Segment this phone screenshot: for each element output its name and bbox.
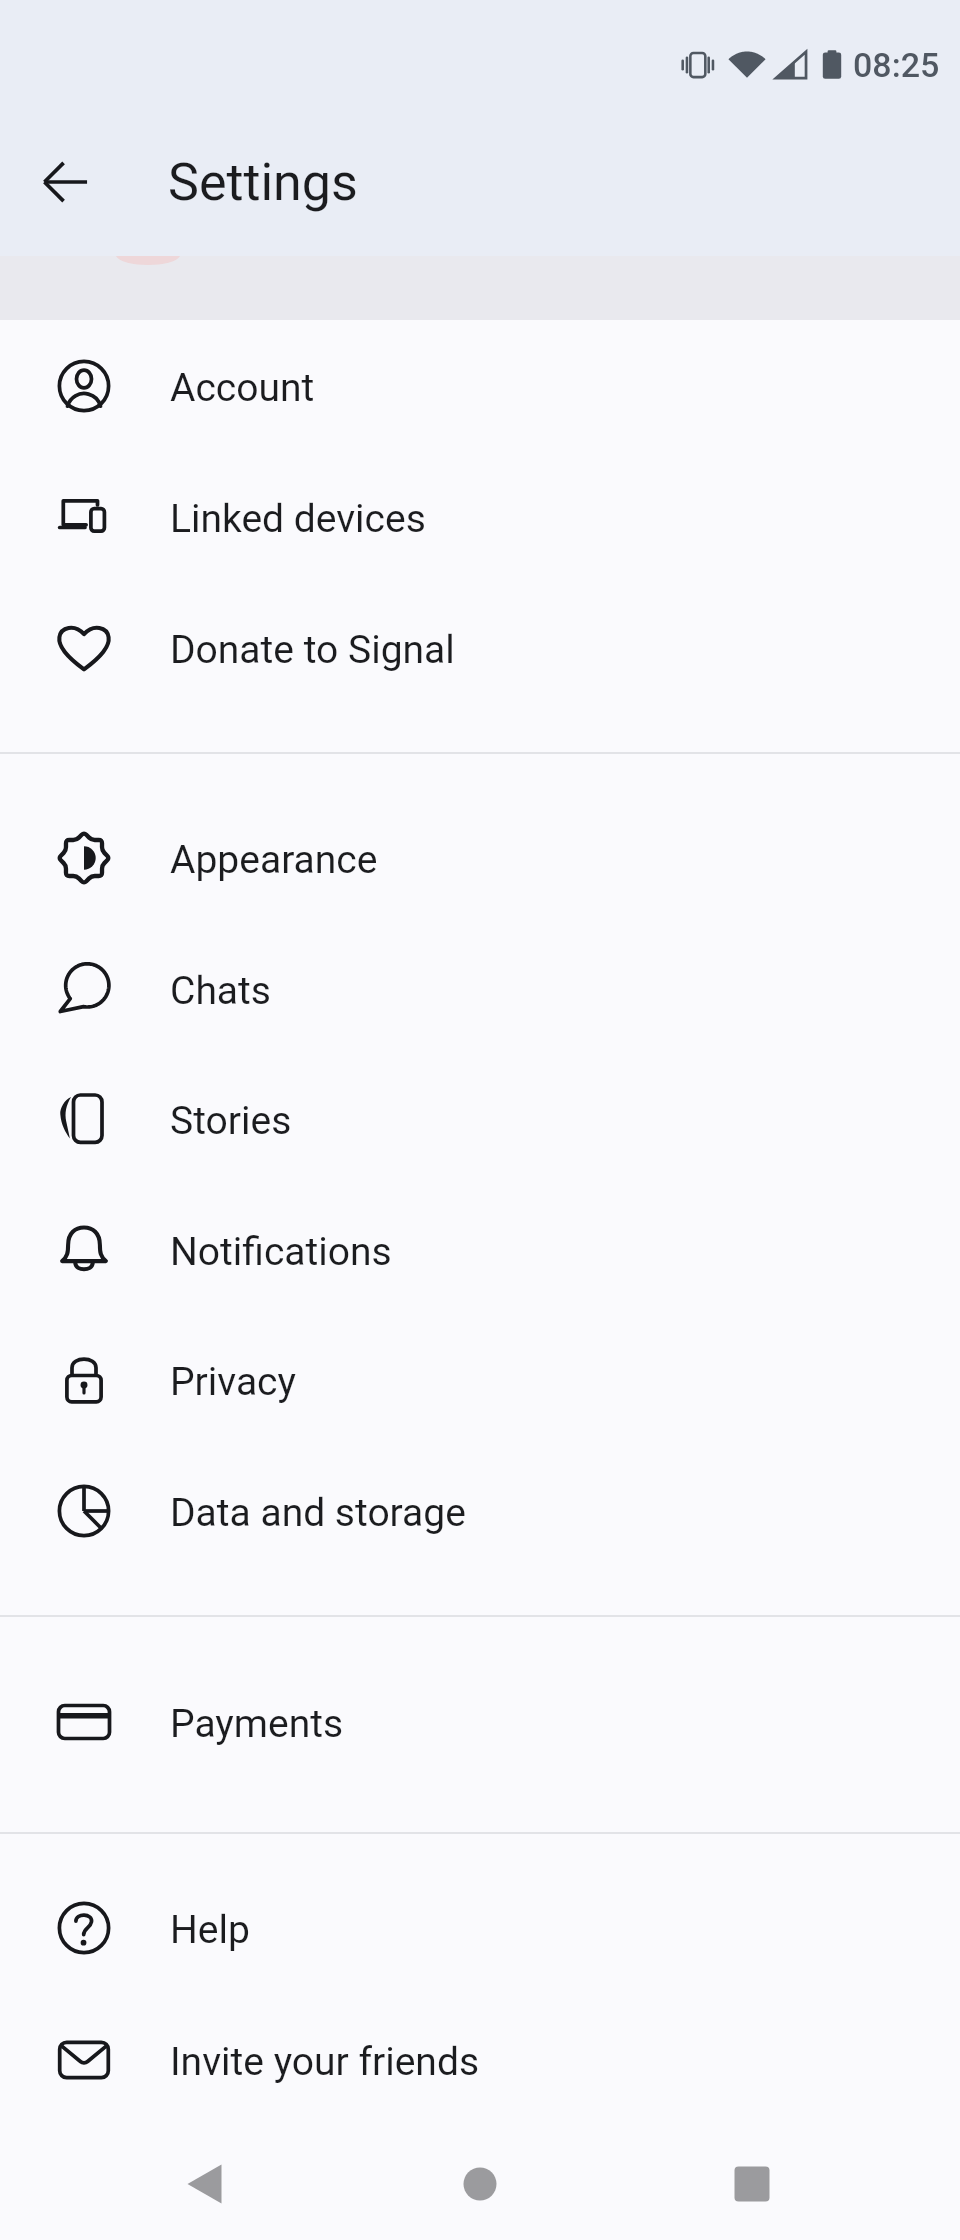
staticText: Account — [170, 365, 315, 411]
button[interactable]: Notifications — [0, 1184, 960, 1315]
button[interactable]: Privacy — [0, 1315, 960, 1445]
button[interactable]: Stories — [0, 1054, 960, 1184]
button[interactable]: Help — [0, 1861, 960, 1994]
staticText: Privacy — [170, 1359, 296, 1405]
staticText: Invite your friends — [170, 2039, 480, 2085]
button[interactable]: Appearance — [0, 793, 960, 923]
staticText: Data and storage — [170, 1490, 466, 1536]
button[interactable]: Data and storage — [0, 1445, 960, 1576]
button[interactable]: Chats — [0, 923, 960, 1054]
staticText: Notifications — [170, 1229, 392, 1275]
button[interactable]: Donate to Signal — [0, 582, 960, 713]
staticText: Payments — [170, 1701, 344, 1747]
staticText: Donate to Signal — [170, 627, 455, 673]
button[interactable]: Back — [18, 134, 114, 230]
staticText: Linked devices — [170, 496, 426, 542]
staticText: Help — [170, 1907, 250, 1953]
button[interactable]: Payments — [0, 1656, 960, 1787]
staticText: Stories — [170, 1098, 292, 1144]
button[interactable]: Account — [0, 320, 960, 452]
button[interactable]: Invite your friends — [0, 1994, 960, 2125]
button[interactable]: Linked devices — [0, 452, 960, 582]
staticText: Appearance — [170, 837, 378, 883]
staticText: Settings — [168, 152, 358, 213]
staticText: Chats — [170, 968, 271, 1014]
staticText: 08:25 — [853, 45, 940, 85]
